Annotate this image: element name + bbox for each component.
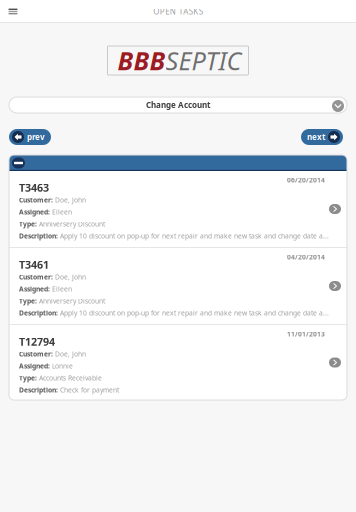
staticText: 11/01/2013 [287,330,325,338]
staticText: Assigned: [19,285,50,293]
staticText: Check for payment [60,386,119,394]
button[interactable]: Menu [0,0,26,23]
staticText: Lonnie [52,362,73,370]
staticText: 06/20/2014 [287,176,325,184]
staticText: Description: [19,309,58,317]
staticText: SEPTIC [165,44,241,77]
staticText: Eileen [52,208,72,216]
staticText: OPEN TASKS [153,6,203,17]
staticText: BBB [117,44,165,77]
staticText: Description: [19,386,58,394]
staticText: prev [27,132,45,142]
staticText: 04/20/2014 [287,253,325,261]
staticText: T12794 [19,334,55,349]
staticText: Assigned: [19,208,50,216]
staticText: T3461 [19,257,49,272]
staticText: Type: [19,220,37,228]
button[interactable]: prev [9,129,51,145]
staticText: Accounts Receivable [39,374,102,382]
staticText: Assigned: [19,362,50,370]
staticText: Customer: [19,273,53,281]
staticText: Customer: [19,196,53,204]
staticText: Anniversery Discount [39,220,105,228]
staticText: Customer: [19,350,53,358]
staticText: Doe, John [55,350,86,358]
staticText: Description: [19,232,58,240]
staticText: Apply 10 discount on pop-up for next rep… [60,309,329,317]
staticText: Anniversery Discount [39,297,105,305]
button[interactable]: next [301,129,343,145]
button[interactable]: T3461 [9,248,347,324]
staticText: Type: [19,297,37,305]
staticText: Eileen [52,285,72,293]
staticText: Change Account [146,100,210,110]
staticText: Apply 10 discount on pop-up for next rep… [60,232,329,240]
button[interactable]: Change Account [9,97,347,113]
staticText: Type: [19,374,37,382]
staticText: Doe, John [55,273,86,281]
button[interactable]: T12794 [9,325,347,400]
staticText: T3463 [19,180,49,195]
staticText: Doe, John [55,196,86,204]
button[interactable]: T3463 [9,171,347,247]
staticText: next [307,132,325,142]
